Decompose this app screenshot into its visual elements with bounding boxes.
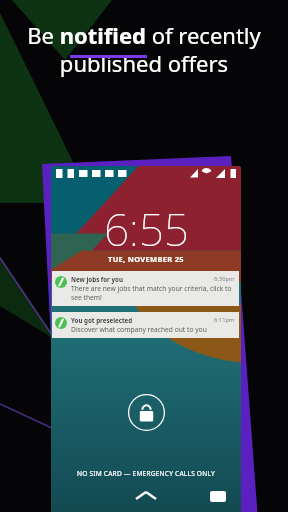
- button[interactable]: Unlock: [128, 394, 165, 431]
- staticText: 6:11pm: [214, 316, 235, 324]
- staticText: You got preselected: [71, 316, 214, 324]
- staticText: Be notified of recently published offers: [27, 20, 261, 78]
- button[interactable]: You got preselected: [52, 312, 239, 338]
- staticText: 6:55: [104, 199, 189, 259]
- staticText: New jobs for you: [71, 275, 214, 283]
- staticText: TUE, NOVEMBER 25: [108, 254, 184, 264]
- button[interactable]: New jobs for you: [52, 271, 239, 306]
- staticText: 6:30pm: [214, 275, 235, 283]
- staticText: NO SIM CARD — EMERGENCY CALLS ONLY: [77, 469, 215, 478]
- staticText: There are new jobs that match your crite…: [71, 284, 232, 302]
- staticText: Discover what company reached out to you: [71, 325, 207, 334]
